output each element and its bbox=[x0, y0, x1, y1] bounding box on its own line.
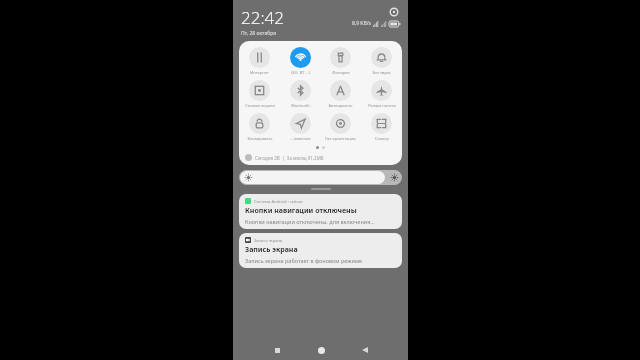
staticText: Кнопки навигации отключены bbox=[245, 206, 357, 216]
staticText: Сегодня 2В | За месяц 91,2МБ bbox=[255, 155, 324, 161]
button[interactable]: Снимок экрана bbox=[240, 80, 279, 108]
button[interactable]: Без звука bbox=[362, 47, 401, 75]
button[interactable]: Settings bbox=[388, 6, 400, 18]
button[interactable]: Recents bbox=[266, 340, 288, 360]
button[interactable]: Back bbox=[354, 340, 376, 360]
button[interactable]: Сканер bbox=[362, 113, 401, 141]
staticText: Фонарик bbox=[332, 70, 350, 75]
staticText: (4G BT …) bbox=[291, 70, 310, 75]
button[interactable]: Режим полета bbox=[362, 80, 401, 108]
button[interactable]: Система Android • сейчас bbox=[239, 194, 402, 229]
button[interactable]: Bluetooth bbox=[281, 80, 320, 108]
button[interactable]: Home bbox=[310, 340, 332, 360]
staticText: Снимок экрана bbox=[245, 103, 275, 108]
button[interactable]: (4G BT …) bbox=[281, 47, 320, 75]
staticText: Запись экрана работает в фоновом режиме bbox=[245, 257, 363, 264]
staticText: Запись экрана bbox=[254, 238, 283, 243]
button[interactable]: Автояркость bbox=[321, 80, 360, 108]
staticText: ...ложение bbox=[290, 136, 311, 141]
button[interactable]: Газ ориентации bbox=[321, 113, 360, 141]
staticText: Без звука bbox=[372, 70, 391, 75]
staticText: Интернет bbox=[250, 70, 269, 75]
staticText: Bluetooth bbox=[291, 103, 310, 108]
staticText: Газ ориентации bbox=[325, 136, 356, 141]
button[interactable]: Фонарик bbox=[321, 47, 360, 75]
button[interactable] bbox=[239, 170, 402, 185]
staticText: 22:42 bbox=[241, 6, 284, 29]
staticText: Пт, 28 октября bbox=[241, 30, 277, 37]
staticText: Запись экрана bbox=[245, 245, 298, 255]
button[interactable]: Интернет bbox=[240, 47, 279, 75]
staticText: Система Android • сейчас bbox=[254, 199, 304, 204]
button[interactable]: Запись экрана bbox=[239, 233, 402, 268]
staticText: Автояркость bbox=[328, 103, 353, 108]
staticText: Блокировать bbox=[247, 136, 273, 141]
staticText: 8,9 KB/s bbox=[352, 20, 371, 27]
staticText: Сканер bbox=[375, 136, 389, 141]
staticText: Режим полета bbox=[368, 103, 396, 108]
button[interactable]: Блокировать bbox=[240, 113, 279, 141]
button[interactable]: ...ложение bbox=[281, 113, 320, 141]
staticText: Кнопки навигации отключены, для включени… bbox=[245, 218, 375, 225]
